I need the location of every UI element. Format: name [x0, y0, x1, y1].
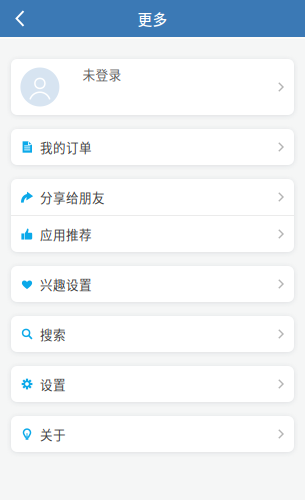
button[interactable]: 应用推荐: [11, 216, 294, 252]
button[interactable]: 分享给朋友: [11, 179, 294, 215]
button[interactable]: 关于: [11, 416, 294, 452]
staticText: 分享给朋友: [40, 188, 105, 206]
button[interactable]: 我的订单: [11, 129, 294, 165]
button[interactable]: 设置: [11, 366, 294, 402]
staticText: 未登录: [82, 65, 121, 83]
button[interactable]: 未登录: [11, 59, 294, 115]
staticText: 关于: [40, 425, 66, 443]
staticText: 搜索: [40, 325, 66, 343]
button[interactable]: 兴趣设置: [11, 266, 294, 302]
staticText: 更多: [137, 8, 167, 29]
button[interactable]: 搜索: [11, 316, 294, 352]
button[interactable]: Back: [0, 0, 40, 37]
staticText: 应用推荐: [40, 225, 92, 243]
staticText: 我的订单: [40, 138, 92, 156]
staticText: 兴趣设置: [40, 275, 92, 293]
staticText: 设置: [40, 375, 66, 393]
